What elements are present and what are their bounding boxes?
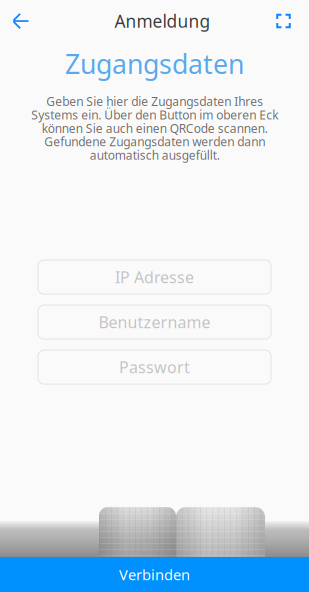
staticText: Anmeldung (114, 9, 210, 32)
staticText: IP Adresse (115, 266, 194, 288)
staticText: Geben Sie hier die Zugangsdaten Ihres Sy… (31, 93, 278, 163)
staticText: Benutzername (98, 311, 210, 333)
staticText: Verbinden (119, 565, 190, 584)
button[interactable]: Back (0, 0, 41, 42)
staticText: Zugangsdaten (65, 46, 244, 81)
button[interactable]: Scan QR code (263, 0, 304, 42)
staticText: Passwort (119, 356, 190, 378)
button[interactable]: Verbinden (0, 557, 309, 592)
